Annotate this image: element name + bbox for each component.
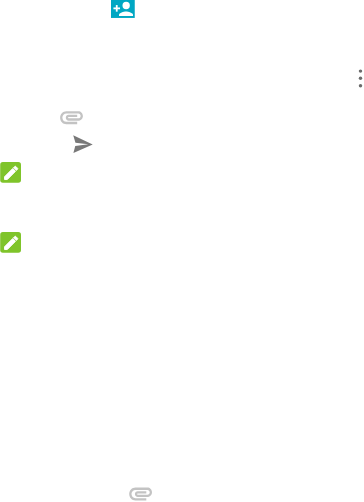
button[interactable]: Attach file [54,105,89,130]
button[interactable]: Compose message [0,156,27,189]
button[interactable]: More options [348,59,364,98]
button[interactable]: Compose message [0,226,27,259]
button[interactable]: Send message [67,129,99,159]
button[interactable]: Attach file [123,481,158,502]
button[interactable]: Add contact [111,0,135,18]
